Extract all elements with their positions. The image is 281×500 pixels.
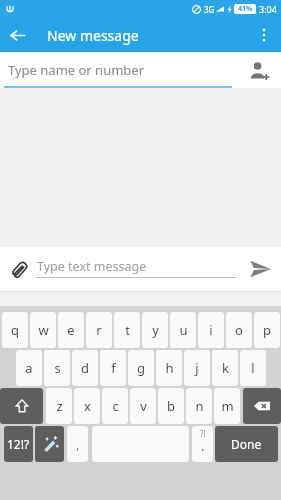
button[interactable]: Done — [215, 426, 278, 462]
staticText: , — [76, 438, 79, 453]
staticText: s — [54, 359, 61, 377]
staticText: c — [112, 397, 119, 415]
staticText: j — [195, 359, 199, 377]
button[interactable]: l — [240, 350, 266, 386]
button[interactable]: s — [44, 350, 70, 386]
staticText: o — [235, 321, 243, 339]
button[interactable]: Voice input — [35, 426, 64, 462]
staticText: n — [195, 397, 204, 415]
button[interactable]: Add contact — [243, 54, 275, 86]
button[interactable]: j — [184, 350, 210, 386]
button[interactable]: i — [198, 312, 224, 348]
staticText: w — [38, 321, 49, 339]
staticText: u — [179, 321, 188, 339]
button[interactable]: q — [2, 312, 28, 348]
button[interactable]: k — [212, 350, 238, 386]
button[interactable]: v — [130, 388, 156, 424]
button[interactable]: g — [128, 350, 154, 386]
button[interactable]: y — [142, 312, 168, 348]
button[interactable]: r — [86, 312, 112, 348]
button[interactable]: p — [254, 312, 280, 348]
staticText: h — [165, 359, 174, 377]
staticText: x — [84, 397, 91, 415]
button[interactable]: o — [226, 312, 252, 348]
staticText: a — [25, 359, 33, 377]
staticText: l — [251, 359, 255, 377]
button[interactable]: Backspace — [243, 388, 281, 424]
staticText: Type name or number — [8, 61, 145, 79]
button[interactable]: b — [158, 388, 184, 424]
staticText: r — [96, 321, 102, 339]
button[interactable]: h — [156, 350, 182, 386]
staticText: i — [209, 321, 213, 339]
button[interactable]: , — [67, 426, 88, 462]
button[interactable]: n — [186, 388, 212, 424]
button[interactable]: d — [72, 350, 98, 386]
staticText: 3G — [204, 4, 215, 15]
staticText: e — [67, 321, 75, 339]
button[interactable]: z — [46, 388, 72, 424]
staticText: y — [152, 321, 159, 339]
staticText: q — [11, 321, 19, 339]
button[interactable]: More options — [247, 18, 281, 52]
staticText: m — [221, 397, 234, 415]
button[interactable]: a — [16, 350, 42, 386]
staticText: 3:04 — [259, 3, 277, 15]
button[interactable]: f — [100, 350, 126, 386]
staticText: v — [140, 397, 147, 415]
staticText: d — [81, 359, 89, 377]
staticText: 41% — [238, 4, 253, 14]
button[interactable]: x — [74, 388, 100, 424]
staticText: f — [111, 359, 116, 377]
staticText: ?! — [200, 428, 206, 439]
button[interactable]: 12!? — [4, 426, 33, 462]
button[interactable]: Shift — [0, 388, 43, 424]
staticText: . — [201, 437, 205, 455]
button[interactable]: e — [58, 312, 84, 348]
button[interactable]: Attach — [3, 254, 33, 284]
button[interactable]: c — [102, 388, 128, 424]
staticText: z — [56, 397, 63, 415]
button[interactable]: m — [214, 388, 240, 424]
staticText: New message — [47, 26, 139, 45]
button[interactable]: t — [114, 312, 140, 348]
button[interactable]: u — [170, 312, 196, 348]
staticText: g — [137, 359, 145, 377]
staticText: t — [125, 321, 130, 339]
button[interactable]: Back — [0, 18, 34, 52]
button[interactable]: Send — [243, 252, 277, 286]
button[interactable]: ?! — [192, 426, 213, 462]
staticText: 12!? — [7, 436, 30, 452]
staticText: Done — [231, 436, 262, 452]
staticText: b — [167, 397, 175, 415]
button[interactable]: w — [30, 312, 56, 348]
staticText: p — [263, 321, 271, 339]
button[interactable]: Type name or number — [8, 61, 231, 79]
staticText: k — [222, 359, 229, 377]
staticText: Type text message — [37, 258, 147, 275]
